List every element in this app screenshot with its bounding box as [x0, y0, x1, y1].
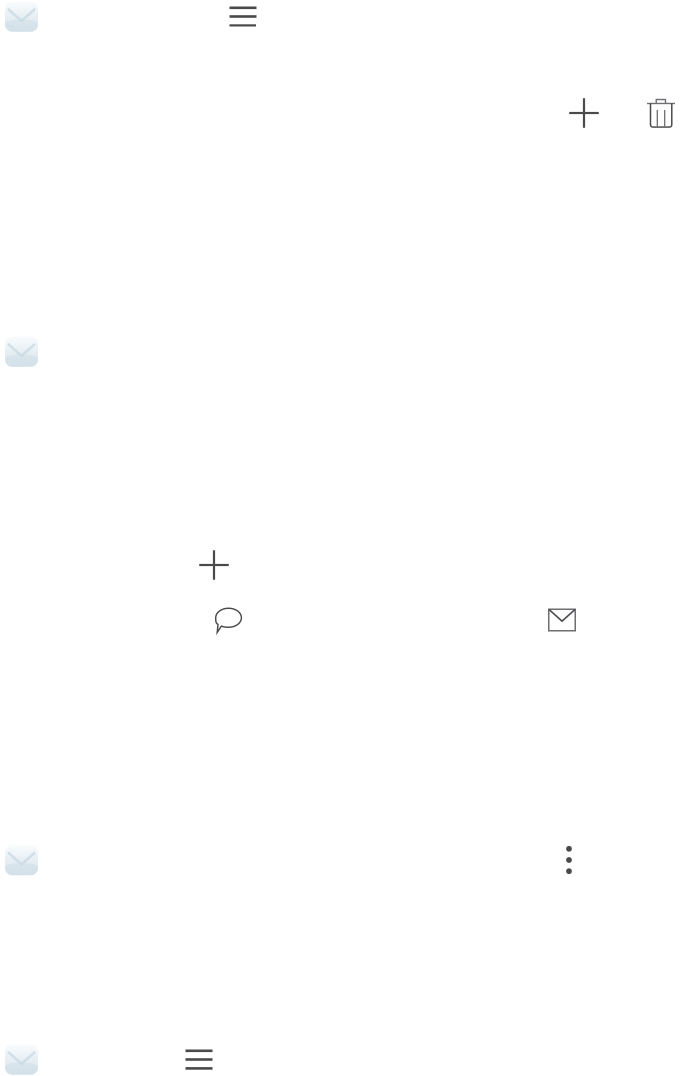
button[interactable]: More options	[547, 838, 591, 882]
button[interactable]: Menu	[172, 1044, 226, 1075]
button[interactable]: Messages	[206, 598, 250, 642]
button[interactable]: New message	[562, 91, 606, 135]
button[interactable]: Menu	[216, 0, 270, 33]
button[interactable]: Add attachment	[192, 543, 236, 587]
button[interactable]: Delete	[639, 91, 683, 135]
button[interactable]: Mail	[540, 598, 584, 642]
